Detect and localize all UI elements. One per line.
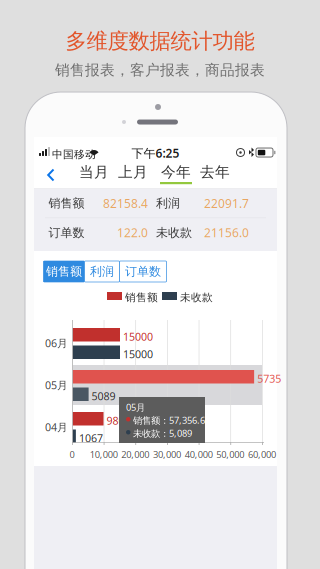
staticText: 订单数 bbox=[125, 264, 161, 279]
staticText: 30,000 bbox=[153, 448, 181, 461]
staticText: 销售额：57,356.6 bbox=[133, 414, 205, 426]
button[interactable]: 订单数 bbox=[119, 261, 166, 282]
staticText: 10,000 bbox=[90, 448, 118, 461]
staticText: 122.0 bbox=[117, 225, 148, 241]
button[interactable]: 销售额 bbox=[43, 261, 84, 282]
staticText: 82158.4 bbox=[103, 195, 148, 211]
staticText: 40,000 bbox=[185, 448, 213, 461]
staticText: 980 bbox=[106, 413, 124, 428]
staticText: 中国移动 bbox=[52, 148, 96, 161]
staticText: 未收款 bbox=[180, 291, 213, 304]
staticText: 04月 bbox=[45, 420, 68, 434]
staticText: 今年 bbox=[161, 163, 191, 181]
staticText: 20,000 bbox=[121, 448, 149, 461]
staticText: 去年 bbox=[200, 163, 230, 181]
staticText: 1067 bbox=[79, 431, 103, 445]
staticText: 销售额 bbox=[46, 264, 82, 279]
staticText: 0 bbox=[69, 448, 74, 461]
staticText: 5089 bbox=[92, 389, 116, 403]
staticText: 销售额 bbox=[48, 196, 84, 211]
staticText: 06月 bbox=[45, 336, 68, 350]
staticText: 订单数 bbox=[48, 225, 84, 240]
staticText: 15000 bbox=[123, 329, 153, 344]
staticText: 当月 bbox=[79, 163, 109, 181]
staticText: 上月 bbox=[118, 163, 148, 181]
staticText: 21156.0 bbox=[204, 225, 249, 241]
button[interactable]: 利润 bbox=[84, 261, 119, 282]
staticText: 15000 bbox=[123, 347, 153, 361]
button[interactable]: 上月 bbox=[116, 161, 150, 189]
staticText: 05月 bbox=[126, 401, 145, 413]
staticText: 下午6:25 bbox=[131, 145, 179, 161]
staticText: 5735 bbox=[257, 371, 281, 386]
staticText: 利润 bbox=[156, 196, 180, 211]
button[interactable]: 去年 bbox=[198, 161, 232, 189]
button[interactable]: 当月 bbox=[77, 161, 111, 189]
staticText: 50,000 bbox=[216, 448, 244, 461]
button[interactable]: Back bbox=[38, 161, 64, 189]
staticText: 22091.7 bbox=[204, 195, 249, 211]
staticText: 60,000 bbox=[248, 448, 276, 461]
staticText: 利润 bbox=[90, 264, 114, 279]
staticText: 多维度数据统计功能 bbox=[65, 28, 254, 54]
staticText: 销售报表，客户报表，商品报表 bbox=[55, 61, 265, 79]
staticText: 销售额 bbox=[125, 291, 158, 304]
staticText: 05月 bbox=[45, 378, 68, 392]
staticText: 未收款：5,089 bbox=[133, 427, 192, 439]
button[interactable]: 今年 bbox=[159, 161, 193, 189]
staticText: 未收款 bbox=[156, 225, 192, 240]
